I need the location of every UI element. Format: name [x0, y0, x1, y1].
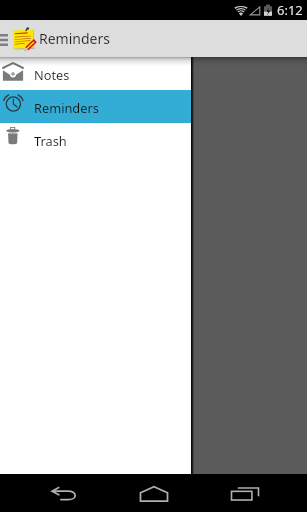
staticText: Reminders	[34, 99, 99, 116]
button[interactable]: Reminders	[0, 90, 191, 123]
button[interactable]: Home	[114, 474, 194, 512]
staticText: Reminders	[39, 29, 110, 48]
button[interactable]: Notes	[0, 57, 191, 90]
staticText: 6:12	[277, 1, 303, 19]
button[interactable]: Back	[24, 474, 104, 512]
button[interactable]: Open navigation drawer	[0, 20, 11, 57]
staticText: Notes	[34, 66, 70, 83]
staticText: Trash	[34, 132, 67, 149]
button[interactable]: Trash	[0, 123, 191, 156]
button[interactable]: Recent apps	[205, 474, 285, 512]
